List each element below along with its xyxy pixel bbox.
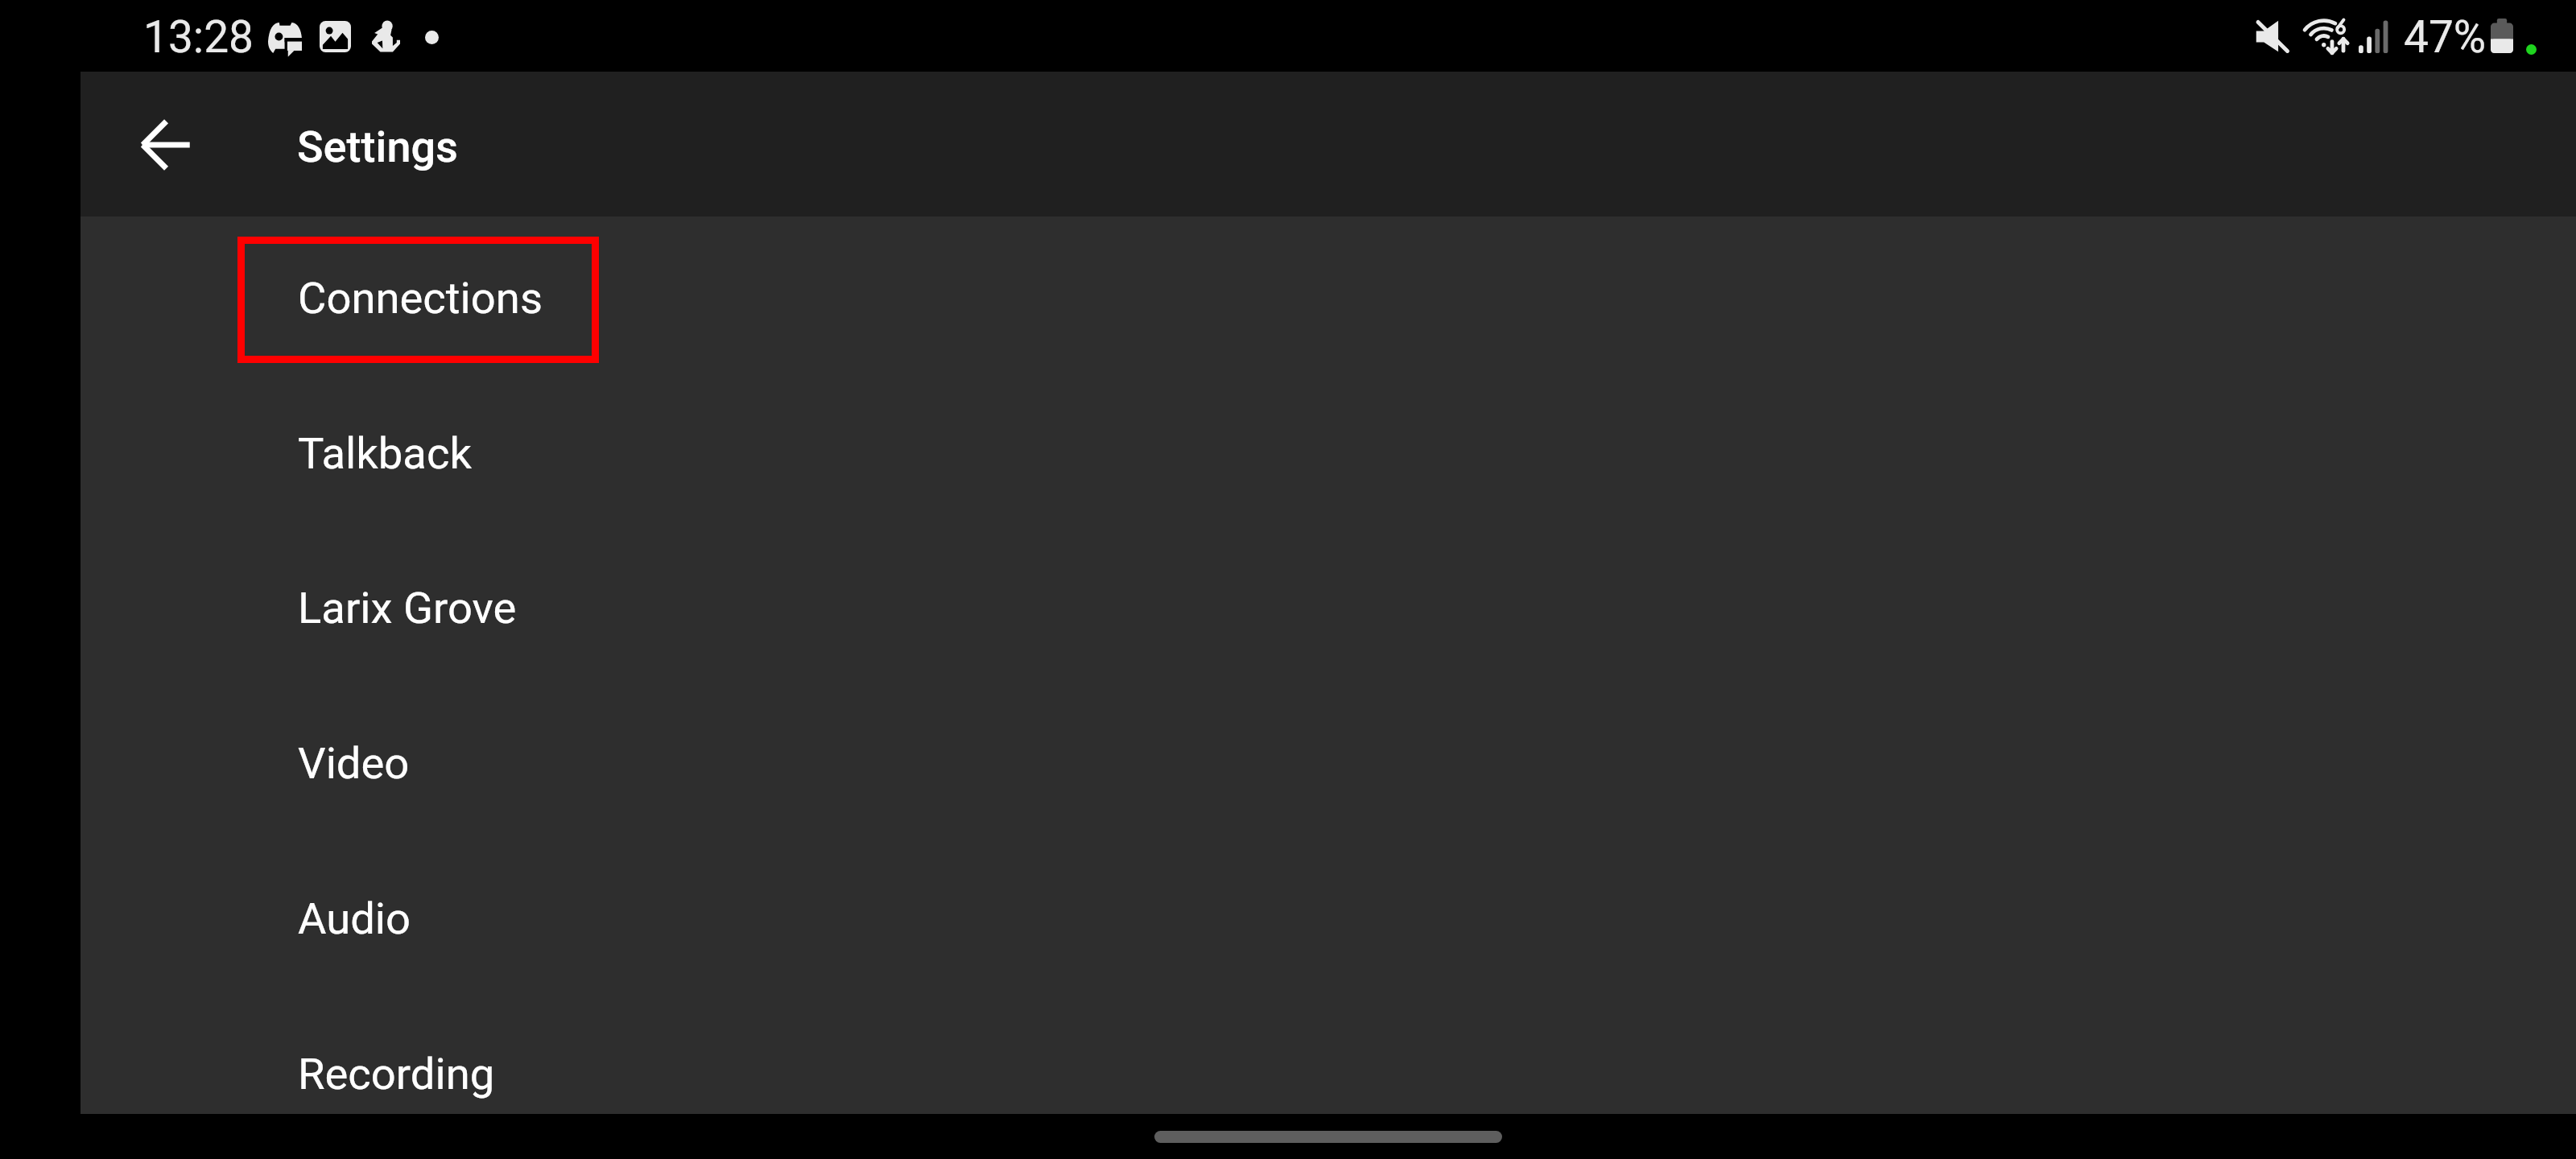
button[interactable]: Talkback (80, 376, 2576, 531)
button[interactable]: Back (117, 97, 213, 193)
staticText: Settings (297, 122, 458, 172)
button[interactable]: Connections (80, 221, 2576, 376)
button[interactable]: Larix Grove (80, 530, 2576, 686)
staticText: 47% (2404, 11, 2487, 63)
staticText: 13:28 (143, 11, 254, 63)
staticText: Video (298, 738, 410, 790)
staticText: Connections (298, 273, 543, 324)
button[interactable]: Video (80, 686, 2576, 841)
staticText: Audio (298, 893, 411, 945)
button[interactable]: Recording (80, 996, 2576, 1152)
staticText: Larix Grove (298, 583, 517, 634)
button[interactable]: Audio (80, 841, 2576, 996)
staticText: Talkback (298, 428, 472, 480)
staticText: Recording (298, 1049, 495, 1100)
